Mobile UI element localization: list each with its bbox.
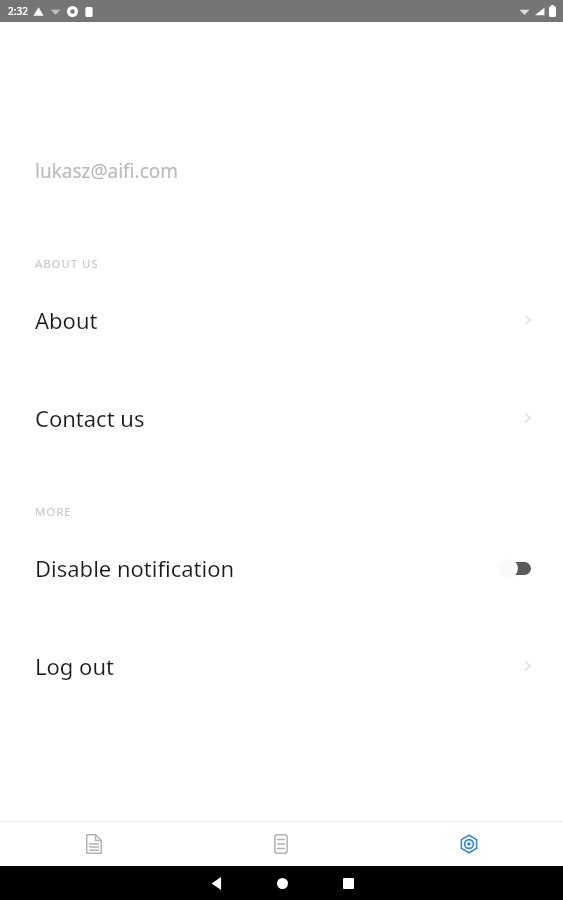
button[interactable]: Receipts (187, 822, 375, 866)
button[interactable]: Home (262, 866, 302, 900)
staticText: Disable notification (35, 553, 235, 583)
staticText: Contact us (35, 403, 145, 433)
button[interactable]: Log out (0, 646, 563, 686)
button[interactable]: Disable notification (0, 548, 563, 588)
button[interactable]: Recent apps (328, 866, 368, 900)
button[interactable]: About (0, 300, 563, 340)
button[interactable]: Contact us (0, 398, 563, 438)
staticText: lukasz@aifi.com (35, 158, 179, 184)
staticText: ABOUT US (35, 256, 99, 272)
staticText: 2:32 (8, 4, 28, 18)
button[interactable]: Back (196, 866, 236, 900)
staticText: Log out (35, 651, 114, 681)
staticText: About (35, 305, 98, 335)
button[interactable]: Settings (375, 822, 563, 866)
button[interactable]: Documents (0, 822, 187, 866)
button[interactable]: Disable notification toggle (499, 557, 533, 579)
staticText: MORE (35, 504, 72, 520)
